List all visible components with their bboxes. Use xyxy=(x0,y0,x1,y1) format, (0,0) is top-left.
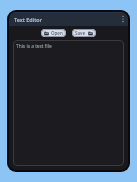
button[interactable]: Folder xyxy=(41,29,66,37)
other: Folder xyxy=(88,31,93,36)
button[interactable]: More options xyxy=(118,12,128,26)
staticText: Open xyxy=(51,30,63,36)
staticText: This is a test file xyxy=(16,43,52,50)
button[interactable]: Save xyxy=(72,29,96,37)
staticText: Save xyxy=(75,30,86,36)
staticText: Text Editor xyxy=(14,16,43,23)
button[interactable]: This is a test file xyxy=(13,40,124,166)
other: Folder xyxy=(44,31,49,36)
